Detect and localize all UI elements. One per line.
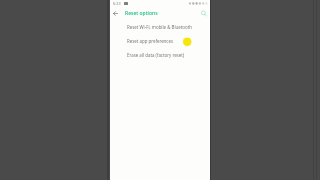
button[interactable]: Reset app preferences [110, 34, 210, 48]
button[interactable]: Reset Wi-Fi, mobile & Bluetooth [110, 20, 210, 34]
staticText: 6:23 [113, 1, 121, 6]
button[interactable]: Search [199, 9, 208, 18]
button[interactable]: Back [111, 9, 120, 18]
button[interactable]: Erase all data (factory reset) [110, 48, 210, 62]
staticText: Reset app preferences [127, 38, 174, 44]
staticText: Erase all data (factory reset) [127, 52, 185, 58]
staticText: Reset options [125, 10, 158, 17]
staticText: Reset Wi-Fi, mobile & Bluetooth [127, 24, 192, 30]
